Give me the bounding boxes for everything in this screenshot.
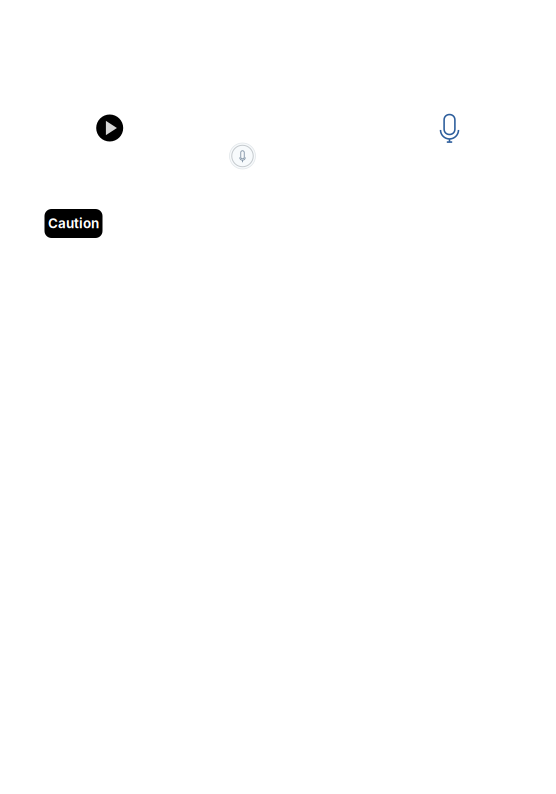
button[interactable]: Caution bbox=[44, 209, 102, 238]
button[interactable]: Record bbox=[229, 143, 255, 169]
button[interactable]: Microphone bbox=[440, 115, 458, 142]
staticText: Caution bbox=[48, 215, 99, 231]
button[interactable]: Play bbox=[96, 114, 123, 141]
